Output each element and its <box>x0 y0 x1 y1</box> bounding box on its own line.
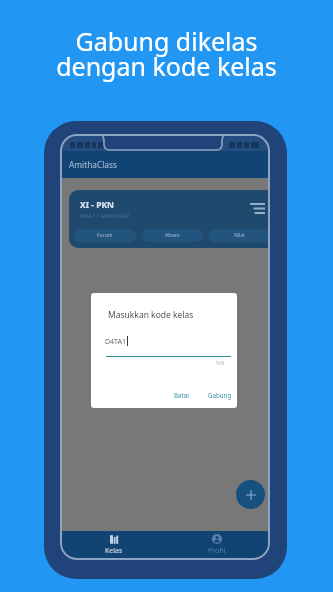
staticText: Forum <box>97 232 113 239</box>
button[interactable]: Kelas <box>62 531 165 558</box>
staticText: Gabung <box>208 391 232 399</box>
other: Menu <box>250 203 265 214</box>
staticText: Absen <box>165 232 180 239</box>
staticText: Profil <box>208 546 226 556</box>
staticText: Nilai <box>234 232 245 239</box>
staticText: 5/6 <box>216 359 225 366</box>
staticText: Gabung dikelas <box>75 24 258 58</box>
staticText: Masukkan kode kelas <box>108 309 194 321</box>
staticText: XI - PKN <box>80 199 114 211</box>
button[interactable]: Tambah kelas <box>236 480 265 509</box>
staticText: Batal <box>174 391 189 399</box>
button[interactable]: XI - PKN <box>69 190 268 248</box>
button[interactable]: Absen <box>142 229 203 242</box>
button[interactable]: Gabung <box>202 387 237 403</box>
staticText: AmithaClass <box>69 159 117 170</box>
staticText: Kelas <box>105 546 123 556</box>
staticText: D4TA1 <box>105 337 126 347</box>
other: Profil <box>212 534 222 544</box>
button[interactable]: Nilai <box>209 229 268 242</box>
button[interactable]: Forum <box>74 229 136 242</box>
other: Kelas <box>109 534 119 544</box>
button[interactable]: Batal <box>168 387 195 403</box>
staticText: SMA 11 MAKASSAR <box>80 212 130 219</box>
staticText: dengan kode kelas <box>56 49 277 83</box>
button[interactable]: Profil <box>165 531 268 558</box>
